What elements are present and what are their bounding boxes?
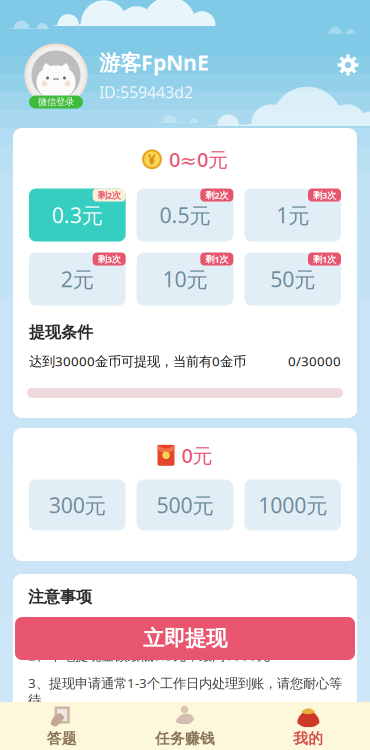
staticText: 2元 xyxy=(61,265,94,293)
button[interactable]: 300元 xyxy=(29,480,126,531)
staticText: 0/30000 xyxy=(288,352,341,370)
button[interactable]: 我的 xyxy=(247,702,370,750)
button[interactable]: 设置 xyxy=(328,45,368,85)
button[interactable]: 0.5元 xyxy=(137,189,233,242)
staticText: 1000元 xyxy=(258,491,327,519)
staticText: 0.5元 xyxy=(159,201,210,229)
button[interactable]: 立即提现 xyxy=(15,617,355,660)
button[interactable]: 500元 xyxy=(137,480,233,531)
staticText: 游客FpNnE xyxy=(99,48,209,76)
staticText: 提现条件 xyxy=(29,323,93,342)
staticText: 立即提现 xyxy=(143,625,227,652)
staticText: 500元 xyxy=(156,491,213,519)
button[interactable]: 任务赚钱 xyxy=(123,702,247,750)
button[interactable]: 0.3元 xyxy=(29,189,126,242)
staticText: 剩2次 xyxy=(98,189,121,201)
staticText: 0.3元 xyxy=(52,201,103,229)
staticText: 剩2次 xyxy=(205,189,228,201)
staticText: 剩3次 xyxy=(313,189,336,201)
staticText: 300元 xyxy=(49,491,106,519)
staticText: 1元 xyxy=(276,201,309,229)
staticText: ID:559443d2 xyxy=(99,81,193,102)
staticText: 答题 xyxy=(47,729,77,747)
button[interactable]: 1000元 xyxy=(244,480,341,531)
staticText: 3、提现申请通常1-3个工作日内处理到账，请您耐心等待 xyxy=(28,674,342,708)
staticText: 达到30000金币可提现，当前有0金币 xyxy=(29,352,246,370)
staticText: 我的 xyxy=(293,729,323,747)
button[interactable]: 微信登录 xyxy=(29,95,83,108)
staticText: ¥ xyxy=(148,150,156,168)
staticText: 剩3次 xyxy=(98,253,121,265)
button[interactable]: 答题 xyxy=(0,702,123,750)
staticText: 剩1次 xyxy=(313,253,336,265)
staticText: 注意事项 xyxy=(28,587,92,607)
button[interactable]: 10元 xyxy=(137,253,233,306)
button[interactable]: 1元 xyxy=(244,189,341,242)
staticText: 微信登录 xyxy=(38,96,74,108)
staticText: 剩1次 xyxy=(205,253,228,265)
staticText: 1、提现需绑定微信账号 xyxy=(28,619,166,636)
staticText: 任务赚钱 xyxy=(155,729,215,747)
staticText: 10元 xyxy=(162,265,207,293)
staticText: 2、单笔提现金额最低0.3元，最高1000元 xyxy=(28,646,270,664)
staticText: 0元 xyxy=(181,442,212,469)
staticText: 50元 xyxy=(270,265,315,293)
button[interactable]: 2元 xyxy=(29,253,126,306)
button[interactable]: 50元 xyxy=(244,253,341,306)
staticText: 0≈0元 xyxy=(169,146,228,173)
